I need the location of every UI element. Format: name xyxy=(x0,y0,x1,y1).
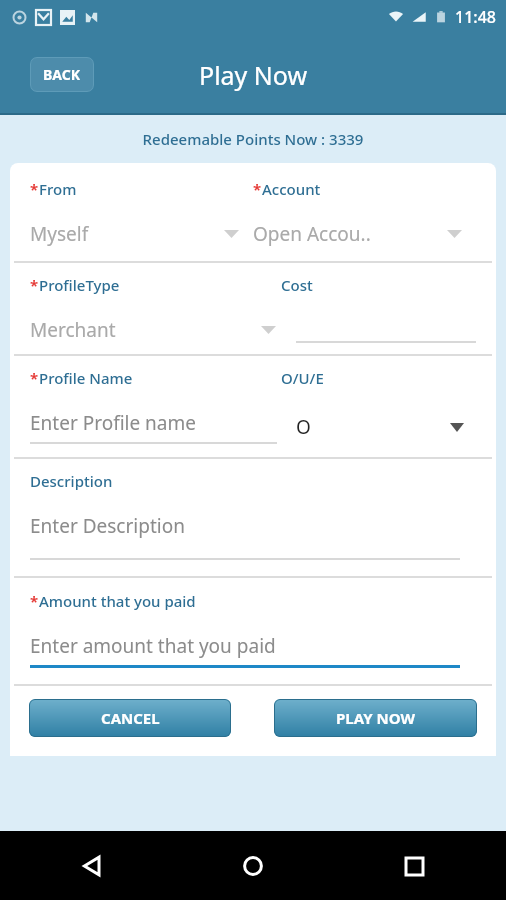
staticText: O xyxy=(296,414,311,440)
staticText: * xyxy=(253,179,262,199)
button[interactable]: Enter amount that you paid xyxy=(30,633,476,668)
button[interactable]: CANCEL xyxy=(29,699,231,737)
staticText: Enter amount that you paid xyxy=(30,633,276,659)
button[interactable]: PLAY NOW xyxy=(274,699,477,737)
other: Open dropdown xyxy=(261,326,276,334)
other: Open dropdown xyxy=(447,230,462,238)
button[interactable]: O xyxy=(296,414,476,440)
staticText: Open Accou.. xyxy=(253,221,371,247)
staticText: * xyxy=(30,591,39,611)
staticText: Enter Description xyxy=(30,513,185,539)
button[interactable]: Open Accou.. xyxy=(253,221,476,247)
button[interactable] xyxy=(296,319,476,343)
staticText: 11:48 xyxy=(455,6,496,28)
staticText: PLAY NOW xyxy=(336,708,415,728)
button[interactable]: Myself xyxy=(30,221,253,247)
staticText: Merchant xyxy=(30,317,116,343)
staticText: Amount that you paid xyxy=(39,591,196,611)
staticText: From xyxy=(39,179,77,199)
staticText: * xyxy=(30,368,39,388)
staticText: Cost xyxy=(281,275,313,295)
button[interactable]: Recent apps xyxy=(392,844,436,888)
staticText: Myself xyxy=(30,221,89,247)
other: Open dropdown xyxy=(224,230,239,238)
staticText: Account xyxy=(262,179,321,199)
staticText: BACK xyxy=(43,65,81,84)
staticText: * xyxy=(30,179,39,199)
other: Select O U E xyxy=(450,423,464,432)
button[interactable]: Enter Profile name xyxy=(30,410,290,444)
staticText: O/U/E xyxy=(281,368,324,388)
button[interactable]: Back xyxy=(70,844,114,888)
staticText: Description xyxy=(30,471,113,491)
staticText: Profile Name xyxy=(39,368,133,388)
staticText: Redeemable Points Now : 3339 xyxy=(0,129,506,149)
staticText: * xyxy=(30,275,39,295)
staticText: CANCEL xyxy=(101,708,160,728)
button[interactable]: Merchant xyxy=(30,317,290,343)
staticText: Enter Profile name xyxy=(30,410,197,436)
button[interactable]: Home xyxy=(231,844,275,888)
button[interactable]: BACK xyxy=(30,57,94,92)
button[interactable]: Enter Description xyxy=(30,513,476,560)
staticText: Play Now xyxy=(199,58,308,92)
staticText: ProfileType xyxy=(39,275,120,295)
